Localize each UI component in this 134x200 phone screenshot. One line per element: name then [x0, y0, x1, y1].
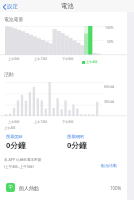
staticText: 螢幕關閉: [67, 134, 84, 139]
staticText: 設定: [7, 3, 18, 10]
staticText: 電池: [61, 2, 74, 10]
staticText: 0分鐘: [67, 140, 87, 150]
staticText: (上午4時–上午5時): [4, 164, 34, 169]
staticText: 0分鐘: [6, 140, 26, 150]
staticText: 100%: [110, 185, 122, 191]
staticText: 上午12時: [34, 120, 48, 124]
staticText: 50%: [107, 39, 114, 43]
staticText: 60分鐘: [104, 84, 115, 89]
button[interactable]: 顯示活動: [101, 163, 117, 168]
staticText: 電池電量: [4, 16, 24, 22]
button[interactable]: 個人熱點: [0, 180, 127, 195]
staticText: 100%: [105, 25, 114, 29]
staticText: 下午6時: [62, 120, 74, 124]
staticText: 上午12時: [34, 57, 48, 61]
staticText: 個人熱點: [19, 185, 39, 191]
staticText: 螢幕開啟: [6, 134, 23, 139]
staticText: 上午4時: [4, 126, 16, 130]
staticText: 上午6時: [8, 120, 20, 124]
staticText: 顯示活動: [101, 163, 117, 168]
staticText: 活動: [4, 71, 14, 77]
staticText: 30分鐘: [104, 99, 115, 104]
button[interactable]: 設定: [0, 1, 21, 12]
staticText: 上午4時: [86, 60, 98, 64]
staticText: 下午6時: [62, 57, 74, 61]
staticText: 上午6時: [8, 57, 20, 61]
staticText: 各 APP 佔總耗電末用量: [4, 157, 42, 162]
